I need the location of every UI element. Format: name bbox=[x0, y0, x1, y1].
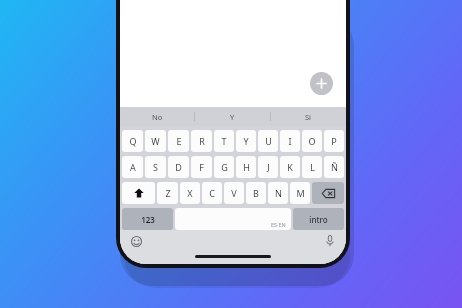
button[interactable]: I bbox=[280, 130, 300, 152]
button[interactable]: Y bbox=[195, 107, 270, 126]
button[interactable]: M bbox=[290, 182, 310, 204]
staticText: Z bbox=[165, 187, 171, 199]
button[interactable]: B bbox=[246, 182, 266, 204]
staticText: L bbox=[310, 161, 315, 173]
staticText: Q bbox=[129, 135, 137, 147]
button[interactable]: Y bbox=[236, 130, 256, 152]
button[interactable]: K bbox=[280, 156, 300, 178]
staticText: ES·EN bbox=[271, 221, 286, 228]
button[interactable]: Emoji bbox=[128, 233, 144, 249]
button[interactable]: V bbox=[224, 182, 244, 204]
button[interactable]: R bbox=[191, 130, 212, 152]
staticText: V bbox=[231, 187, 237, 199]
button[interactable]: C bbox=[202, 182, 222, 204]
button[interactable]: H bbox=[236, 156, 256, 178]
button[interactable]: Voice input bbox=[322, 233, 338, 249]
staticText: E bbox=[176, 135, 182, 147]
button[interactable]: Ñ bbox=[324, 156, 344, 178]
staticText: H bbox=[243, 161, 250, 173]
button[interactable]: intro bbox=[293, 208, 344, 230]
staticText: F bbox=[199, 161, 204, 173]
button[interactable]: N bbox=[268, 182, 288, 204]
staticText: X bbox=[187, 187, 193, 199]
button[interactable]: 123 bbox=[122, 208, 173, 230]
staticText: N bbox=[275, 187, 282, 199]
staticText: T bbox=[221, 135, 227, 147]
button[interactable]: Q bbox=[122, 130, 143, 152]
button[interactable]: Space bbox=[175, 208, 291, 230]
button[interactable]: P bbox=[324, 130, 344, 152]
button[interactable]: T bbox=[214, 130, 234, 152]
staticText: U bbox=[265, 135, 272, 147]
button[interactable]: J bbox=[258, 156, 278, 178]
staticText: Y bbox=[230, 112, 235, 122]
button[interactable]: S bbox=[145, 156, 166, 178]
button[interactable]: X bbox=[180, 182, 200, 204]
button[interactable]: G bbox=[214, 156, 234, 178]
staticText: Si bbox=[305, 112, 312, 122]
button[interactable]: Shift bbox=[122, 182, 155, 204]
staticText: Ñ bbox=[331, 161, 338, 173]
staticText: Y bbox=[243, 135, 249, 147]
staticText: I bbox=[288, 135, 292, 147]
button[interactable]: A bbox=[122, 156, 143, 178]
staticText: A bbox=[130, 161, 136, 173]
staticText: S bbox=[153, 161, 158, 173]
button[interactable]: L bbox=[302, 156, 322, 178]
button[interactable]: Backspace bbox=[312, 182, 344, 204]
button[interactable]: O bbox=[302, 130, 322, 152]
button[interactable]: W bbox=[145, 130, 166, 152]
staticText: intro bbox=[309, 214, 328, 225]
button[interactable]: Add attachment bbox=[310, 72, 333, 95]
button[interactable]: D bbox=[168, 156, 189, 178]
staticText: O bbox=[308, 135, 316, 147]
button[interactable]: Z bbox=[157, 182, 178, 204]
staticText: W bbox=[151, 135, 160, 147]
staticText: D bbox=[175, 161, 182, 173]
staticText: M bbox=[296, 187, 305, 199]
button[interactable]: F bbox=[191, 156, 212, 178]
staticText: J bbox=[267, 161, 270, 173]
staticText: No bbox=[152, 112, 163, 122]
button[interactable]: U bbox=[258, 130, 278, 152]
staticText: B bbox=[253, 187, 259, 199]
button[interactable]: No bbox=[120, 107, 194, 126]
staticText: G bbox=[221, 161, 228, 173]
staticText: C bbox=[209, 187, 215, 199]
staticText: R bbox=[199, 135, 205, 147]
staticText: 123 bbox=[141, 214, 155, 225]
staticText: P bbox=[331, 135, 337, 147]
button[interactable]: Si bbox=[271, 107, 346, 126]
staticText: K bbox=[287, 161, 293, 173]
button[interactable]: E bbox=[168, 130, 189, 152]
